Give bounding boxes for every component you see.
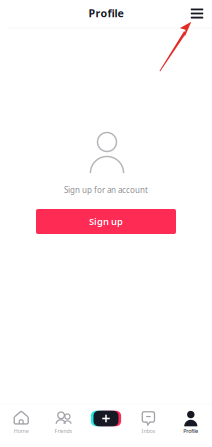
button[interactable]: Create — [85, 404, 127, 440]
staticText: Home — [14, 427, 29, 435]
button[interactable]: Home — [0, 404, 42, 440]
button[interactable]: Inbox — [127, 404, 170, 440]
staticText: Profile — [88, 6, 123, 20]
button[interactable]: Menu — [183, 1, 211, 25]
staticText: Inbox — [141, 427, 155, 435]
staticText: Friends — [55, 427, 73, 435]
staticText: Profile — [183, 427, 198, 435]
button[interactable]: Sign up — [36, 209, 176, 234]
staticText: Sign up for an account — [64, 185, 148, 195]
button[interactable]: Profile — [170, 404, 212, 440]
button[interactable]: Friends — [42, 404, 85, 440]
staticText: Sign up — [89, 215, 123, 228]
